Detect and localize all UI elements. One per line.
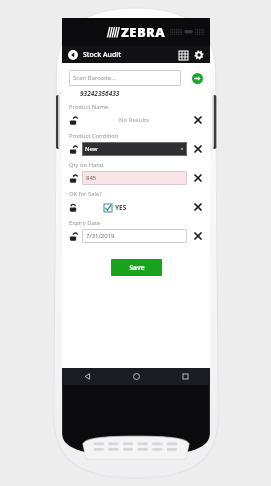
button[interactable]: Locked — [68, 202, 79, 213]
staticText: Save — [129, 263, 145, 272]
staticText: 7/31/2019 — [86, 232, 115, 240]
button[interactable]: Save — [111, 259, 162, 276]
staticText: Expiry Date — [69, 219, 101, 227]
button[interactable]: Back — [62, 368, 112, 385]
button[interactable]: 845 — [82, 171, 187, 185]
staticText: ZEBRA — [121, 23, 166, 41]
button[interactable]: Unlocked — [68, 173, 79, 184]
button[interactable]: Recents — [161, 368, 210, 385]
button[interactable]: Settings — [192, 48, 206, 62]
button[interactable]: Clear — [192, 143, 204, 155]
staticText: No Results — [119, 116, 150, 124]
staticText: 845 — [86, 174, 97, 182]
button[interactable]: Clear — [192, 172, 204, 184]
button[interactable]: Unlocked — [68, 115, 79, 126]
staticText: Qty on Hand — [69, 161, 104, 169]
button[interactable]: Clear — [192, 114, 204, 126]
button[interactable]: Clear — [192, 201, 204, 213]
staticText: Scan Barcode... — [73, 74, 116, 82]
button[interactable]: Clear — [192, 230, 204, 242]
staticText: New — [85, 145, 98, 153]
staticText: OK for Sale? — [69, 190, 102, 198]
button[interactable]: Unlocked — [68, 144, 79, 155]
button[interactable]: Back — [66, 48, 79, 61]
button[interactable]: Submit — [190, 71, 204, 85]
button[interactable]: YES — [104, 203, 127, 212]
staticText: Stock Audit — [83, 50, 121, 60]
button[interactable]: New — [82, 142, 187, 156]
button[interactable]: Grid view — [176, 48, 190, 62]
staticText: YES — [115, 203, 127, 212]
button[interactable]: Home — [112, 368, 161, 385]
staticText: Product Name — [69, 103, 109, 111]
button[interactable]: Scan Barcode... — [69, 70, 181, 86]
staticText: 93242356433 — [80, 89, 120, 98]
button[interactable]: Unlocked — [68, 231, 79, 242]
staticText: Product Condition — [69, 132, 119, 140]
button[interactable]: 7/31/2019 — [82, 229, 187, 243]
